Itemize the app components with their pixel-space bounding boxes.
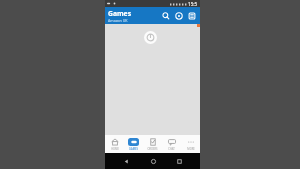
button[interactable]: Back — [120, 155, 132, 167]
button[interactable]: Search — [159, 9, 172, 22]
staticText: Amazon UK — [108, 18, 128, 23]
button[interactable]: HOME — [105, 135, 124, 153]
button[interactable]: CHAT — [162, 135, 181, 153]
staticText: GAMES — [129, 147, 138, 151]
button[interactable]: Recents — [173, 155, 185, 167]
staticText: ORDERS — [147, 147, 158, 151]
button[interactable]: Home — [147, 155, 159, 167]
button[interactable]: MORE — [181, 135, 200, 153]
staticText: MORE — [187, 147, 195, 151]
staticText: Games — [108, 9, 132, 18]
button[interactable]: ORDERS — [143, 135, 162, 153]
button[interactable]: Account — [172, 9, 185, 22]
button[interactable]: List — [185, 9, 198, 22]
staticText: HOME — [111, 147, 119, 151]
staticText: 15:5 — [188, 1, 198, 7]
staticText: CHAT — [168, 147, 175, 151]
button[interactable]: GAMES — [124, 135, 143, 153]
